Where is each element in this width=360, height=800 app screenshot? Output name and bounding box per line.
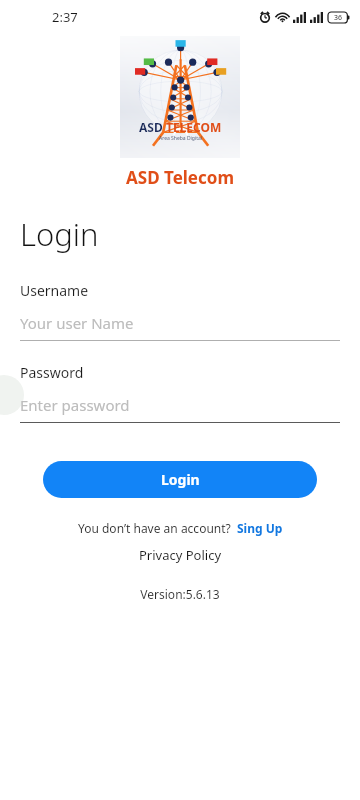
button[interactable]: Login xyxy=(43,461,317,498)
staticText: Your user Name xyxy=(20,313,134,333)
staticText: TELECOM xyxy=(166,119,222,135)
staticText: ASD Telecom xyxy=(0,166,360,189)
staticText: Version:5.6.13 xyxy=(0,586,360,602)
staticText: Login xyxy=(20,213,99,255)
staticText: 2:37 xyxy=(52,8,78,26)
staticText: Privacy Policy xyxy=(139,546,222,564)
staticText: 36 xyxy=(334,13,343,23)
staticText: Username xyxy=(20,281,89,300)
button[interactable]: Privacy Policy xyxy=(139,546,222,564)
staticText: Area Sheba Digital xyxy=(159,135,203,142)
staticText: Password xyxy=(20,363,84,382)
staticText: Enter password xyxy=(20,395,130,415)
staticText: Sing Up xyxy=(237,520,283,536)
button[interactable]: Sing Up xyxy=(237,520,283,536)
staticText: You don’t have an account? xyxy=(78,520,231,536)
staticText: ASD xyxy=(139,119,166,135)
button[interactable]: Password xyxy=(20,363,340,423)
button[interactable]: Username xyxy=(20,281,340,341)
staticText: Login xyxy=(161,470,200,489)
